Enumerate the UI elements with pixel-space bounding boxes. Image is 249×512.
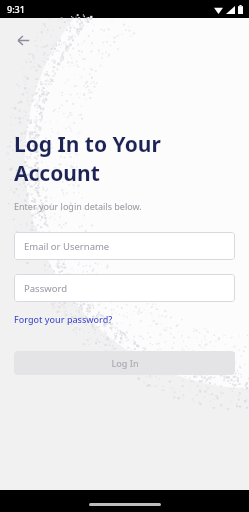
staticText: Log In — [111, 357, 139, 369]
button[interactable]: Email or Username — [14, 232, 235, 260]
button[interactable]: Password — [14, 274, 235, 302]
staticText: Password — [24, 282, 67, 295]
staticText: Forgot your password? — [14, 313, 113, 325]
button[interactable]: Log In — [14, 351, 235, 375]
staticText: Account — [14, 159, 100, 188]
button[interactable]: Forgot your password? — [14, 313, 113, 325]
staticText: Email or Username — [24, 240, 110, 253]
staticText: 9:31 — [7, 3, 25, 15]
button[interactable]: Back — [7, 24, 39, 56]
staticText: Enter your login details below. — [14, 200, 142, 212]
staticText: Log In to Your — [14, 130, 161, 159]
